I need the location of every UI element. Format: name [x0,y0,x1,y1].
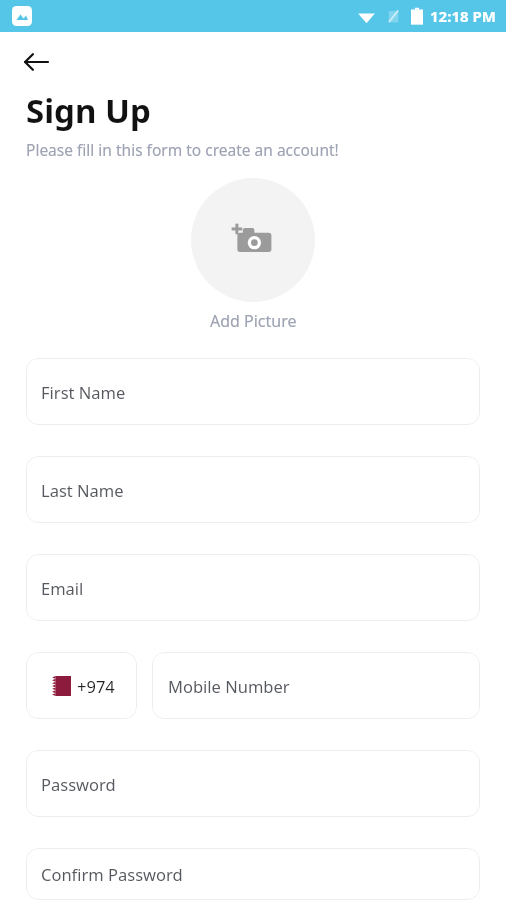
staticText: Confirm Password [41,863,183,885]
button[interactable]: Add Picture [191,178,315,302]
button[interactable]: Last Name [26,456,480,523]
button[interactable]: First Name [26,358,480,425]
staticText: 12:18 PM [430,6,496,26]
button[interactable]: Back [14,40,58,84]
staticText: Please fill in this form to create an ac… [26,139,339,160]
staticText: Sign Up [26,88,151,133]
staticText: Last Name [41,479,124,501]
staticText: Password [41,773,116,795]
button[interactable]: Email [26,554,480,621]
staticText: +974 [77,675,115,697]
staticText: Email [41,577,84,599]
button[interactable]: Password [26,750,480,817]
staticText: Add Picture [210,310,297,332]
button[interactable]: Mobile Number [152,652,480,719]
button[interactable]: +974 [26,652,137,719]
staticText: First Name [41,381,126,403]
staticText: Mobile Number [168,675,290,697]
button[interactable]: Confirm Password [26,848,480,900]
